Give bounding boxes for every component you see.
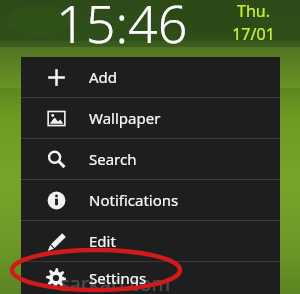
staticText: 17/01 — [232, 23, 275, 45]
staticText: Thu. — [237, 0, 270, 22]
staticText: Edit — [89, 231, 116, 251]
staticText: Wallpaper — [89, 108, 161, 128]
staticText: Notifications — [89, 190, 179, 210]
staticText: Search — [89, 149, 137, 169]
button[interactable]: Notifications — [21, 180, 280, 220]
staticText: Add — [89, 67, 118, 87]
button[interactable]: Wallpaper — [21, 98, 280, 138]
button[interactable]: Search — [21, 139, 280, 179]
button[interactable]: Settings — [21, 262, 280, 294]
button[interactable]: Add — [21, 57, 280, 97]
staticText: 15:46 — [56, 0, 188, 58]
button[interactable]: Edit — [21, 221, 280, 261]
staticText: sarkari.com — [60, 270, 171, 294]
staticText: Settings — [89, 268, 147, 288]
